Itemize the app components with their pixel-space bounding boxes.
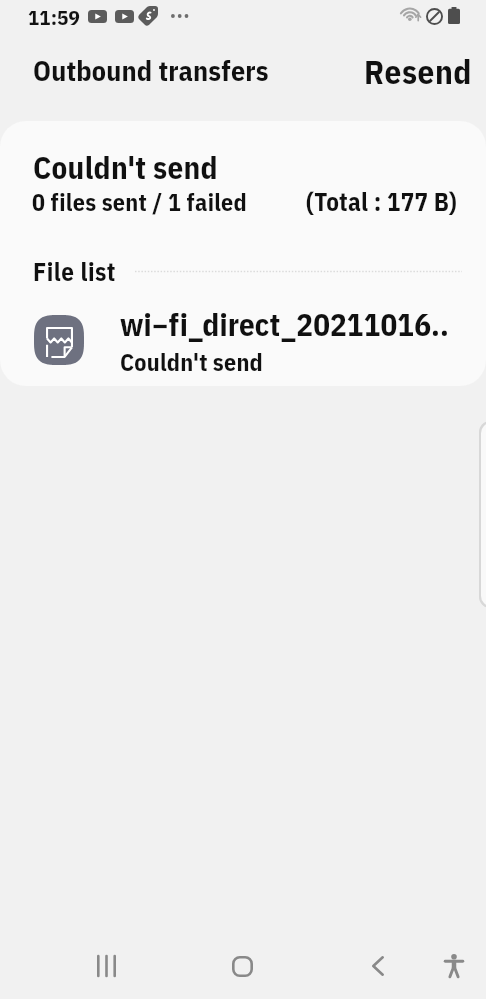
staticText: Couldn't send	[120, 346, 264, 377]
staticText: Couldn't send	[33, 147, 218, 187]
staticText: 11:59	[28, 3, 80, 30]
button[interactable]: Home	[174, 933, 310, 999]
other: Edge panel handle	[481, 423, 486, 606]
staticText: File list	[33, 255, 116, 288]
staticText: (Total : 177 B)	[306, 185, 457, 218]
staticText: Outbound transfers	[33, 52, 269, 88]
button[interactable]: Recents	[39, 933, 174, 999]
staticText: wi−fi_direct_20211016..	[120, 304, 449, 344]
staticText: Resend	[364, 50, 473, 93]
staticText: 0 files sent / 1 failed	[32, 186, 247, 217]
button[interactable]: Back	[310, 933, 446, 999]
button[interactable]: Resend	[356, 44, 481, 99]
button[interactable]: wi−fi_direct_20211016..	[0, 298, 486, 382]
button[interactable]: Accessibility	[430, 933, 478, 999]
